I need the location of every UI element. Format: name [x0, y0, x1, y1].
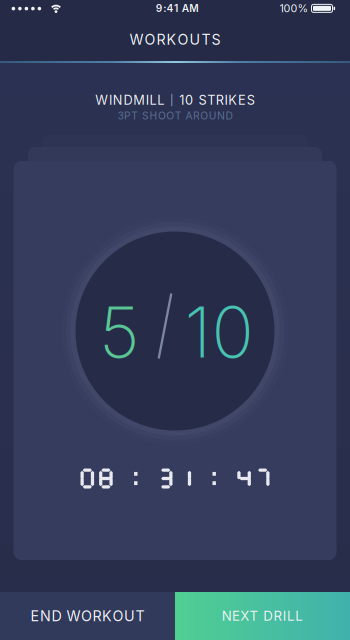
staticText: D — [263, 608, 273, 624]
staticText: O — [158, 109, 166, 122]
staticText: T — [207, 92, 215, 108]
staticText: N — [113, 92, 123, 108]
staticText: I — [146, 92, 149, 108]
staticText: R — [156, 31, 165, 48]
staticText: O — [81, 607, 92, 625]
staticText: O — [177, 31, 188, 48]
staticText: M — [133, 92, 145, 108]
staticText: S — [198, 92, 206, 108]
staticText: M — [189, 2, 198, 14]
staticText: D — [225, 109, 232, 122]
staticText: U — [189, 31, 200, 48]
staticText: 1 — [174, 2, 178, 14]
staticText: T — [175, 109, 182, 122]
staticText: 3 — [117, 109, 123, 122]
staticText: 100% — [279, 2, 308, 15]
staticText: O — [144, 31, 155, 48]
staticText: X — [240, 608, 249, 624]
staticText: O — [200, 109, 208, 122]
staticText: T — [250, 608, 259, 624]
staticText: T — [135, 607, 144, 625]
staticText: S — [142, 109, 149, 122]
staticText: 1 — [179, 92, 184, 108]
staticText: N — [40, 607, 51, 625]
staticText: A — [185, 109, 192, 122]
staticText: P — [124, 109, 131, 122]
staticText: U — [124, 607, 135, 625]
button[interactable]: N — [175, 592, 350, 640]
staticText: I — [225, 92, 228, 108]
staticText: L — [157, 92, 164, 108]
staticText: 10 — [184, 290, 253, 374]
staticText: : — [163, 2, 166, 14]
staticText: K — [102, 607, 112, 625]
staticText: H — [149, 109, 157, 122]
staticText: R — [92, 607, 101, 625]
staticText: 5 — [99, 290, 139, 374]
staticText: I — [109, 92, 112, 108]
staticText: T — [131, 109, 138, 122]
staticText: U — [209, 109, 217, 122]
staticText: E — [238, 92, 246, 108]
staticText: N — [222, 608, 232, 624]
staticText: K — [228, 92, 237, 108]
staticText: O — [166, 109, 174, 122]
staticText: T — [201, 31, 210, 48]
staticText: E — [232, 608, 240, 624]
staticText: S — [247, 92, 255, 108]
staticText: E — [30, 607, 39, 625]
staticText: D — [123, 92, 132, 108]
staticText: W — [66, 607, 80, 625]
staticText: S — [211, 31, 220, 48]
staticText: A — [182, 2, 189, 14]
staticText: L — [287, 608, 295, 624]
staticText: D — [51, 607, 61, 625]
staticText: L — [295, 608, 303, 624]
staticText: R — [193, 109, 200, 122]
staticText: R — [216, 92, 224, 108]
staticText: 9 — [156, 2, 163, 14]
staticText: L — [150, 92, 157, 108]
staticText: I — [283, 608, 287, 624]
staticText: W — [129, 31, 143, 48]
staticText: K — [166, 31, 176, 48]
staticText: W — [95, 92, 108, 108]
staticText: O — [112, 607, 123, 625]
staticText: N — [217, 109, 225, 122]
staticText: 0 — [185, 92, 193, 108]
staticText: R — [273, 608, 282, 624]
staticText: 4 — [167, 2, 174, 14]
button[interactable]: E — [0, 592, 175, 640]
